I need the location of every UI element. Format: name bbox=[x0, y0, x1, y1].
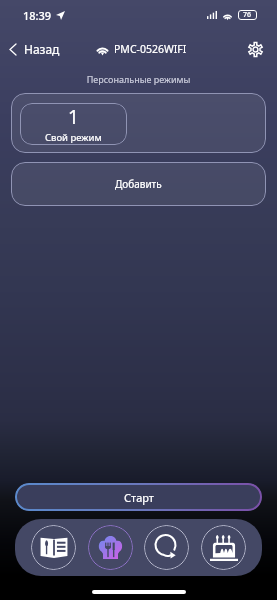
button[interactable]: Старт bbox=[15, 483, 262, 511]
button[interactable]: Добавить bbox=[11, 162, 266, 206]
button[interactable]: Cook bbox=[88, 525, 133, 570]
button[interactable]: Settings bbox=[243, 37, 267, 61]
button[interactable]: Назад bbox=[0, 35, 68, 63]
button[interactable]: Timer bbox=[201, 525, 246, 570]
staticText: Старт bbox=[124, 490, 154, 505]
button[interactable]: 1 bbox=[20, 103, 127, 145]
button[interactable]: History bbox=[144, 525, 189, 570]
button[interactable]: 1 bbox=[11, 93, 266, 153]
staticText: 18:39 bbox=[23, 8, 52, 23]
staticText: 76 bbox=[243, 10, 252, 20]
staticText: 1 bbox=[68, 104, 79, 130]
staticText: Персональные режимы bbox=[0, 73, 277, 85]
staticText: Назад bbox=[24, 41, 60, 57]
button[interactable]: Recipes bbox=[31, 525, 76, 570]
staticText: PMC-0526WIFI bbox=[114, 42, 187, 56]
staticText: Свой режим bbox=[45, 131, 102, 144]
staticText: Добавить bbox=[115, 177, 162, 191]
